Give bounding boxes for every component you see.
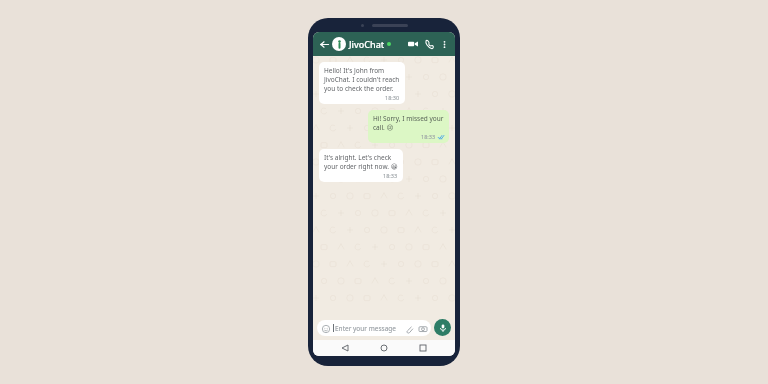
staticText: 18:30 — [385, 94, 400, 101]
button[interactable]: Camera — [417, 323, 428, 334]
button[interactable]: Back — [317, 37, 331, 51]
staticText: Hello! It's John from — [324, 66, 385, 75]
button[interactable]: Recent apps — [416, 341, 430, 355]
staticText: your order right now. 😀 — [324, 162, 398, 171]
button[interactable]: JivoChat avatar — [332, 37, 346, 51]
staticText: It's alright. Let's check — [324, 153, 392, 162]
staticText: 18:33 — [383, 172, 398, 179]
staticText: JivoChat — [349, 38, 385, 50]
button[interactable]: Call — [421, 36, 437, 52]
staticText: Hi! Sorry, I missed your — [373, 114, 444, 123]
button[interactable]: More options — [437, 37, 451, 51]
button[interactable]: Back — [338, 341, 352, 355]
button[interactable]: Hi! Sorry, I missed your — [368, 110, 449, 143]
button[interactable]: Emoji — [320, 323, 331, 334]
staticText: you to check the order. — [324, 84, 394, 93]
staticText: call. 😢 — [373, 123, 394, 132]
button[interactable]: Attach — [403, 323, 414, 334]
button[interactable]: Emoji — [317, 320, 431, 336]
button[interactable]: Home — [377, 341, 391, 355]
button[interactable]: Hello! It's John from — [319, 62, 405, 104]
button[interactable]: Video call — [405, 36, 421, 52]
button[interactable]: It's alright. Let's check — [319, 149, 403, 182]
staticText: 18:33 — [421, 133, 436, 140]
staticText: JivoChat. I couldn't reach — [324, 75, 400, 84]
button[interactable]: Voice message — [434, 319, 451, 336]
staticText: Enter your message — [335, 324, 396, 333]
